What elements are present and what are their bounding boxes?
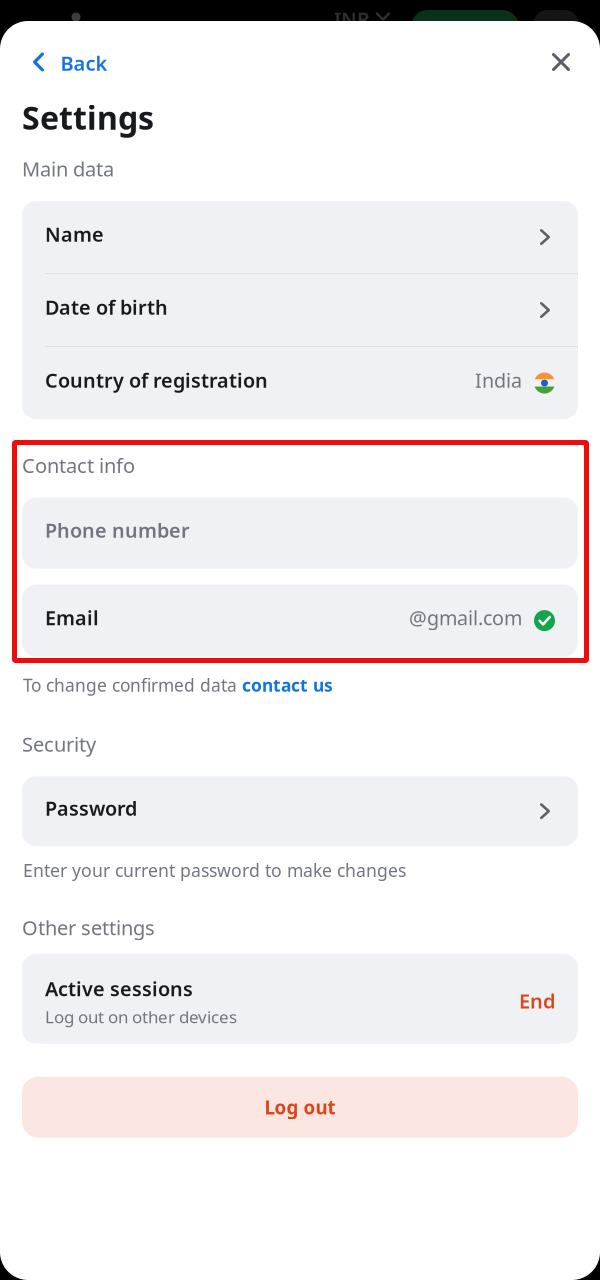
button[interactable]: Name: [22, 201, 578, 273]
staticText: Name: [45, 221, 104, 247]
staticText: Phone number: [45, 517, 190, 544]
staticText: Log out: [264, 1095, 335, 1120]
button[interactable]: Active sessions: [22, 954, 578, 1044]
staticText: Enter your current password to make chan…: [23, 858, 406, 882]
staticText: Country of registration: [45, 367, 268, 393]
button[interactable]: Password: [22, 776, 578, 846]
button[interactable]: Phone number: [22, 498, 578, 569]
button[interactable]: Close: [539, 40, 600, 84]
staticText: contact us: [242, 674, 333, 697]
staticText: Back: [60, 49, 107, 77]
button[interactable]: Back: [0, 40, 127, 84]
staticText: Contact info: [22, 452, 135, 479]
button[interactable]: Country of registration: [22, 347, 578, 419]
staticText: Log out on other devices: [45, 1005, 237, 1028]
staticText: Other settings: [22, 914, 155, 941]
staticText: Security: [22, 731, 96, 757]
staticText: INR: [334, 6, 370, 32]
staticText: Main data: [22, 155, 114, 182]
staticText: To change confirmed data: [23, 674, 242, 697]
button[interactable]: Email: [22, 585, 578, 657]
staticText: @gmail.com: [409, 604, 522, 631]
button[interactable]: Log out: [22, 1077, 578, 1138]
staticText: Email: [45, 604, 99, 631]
button[interactable]: Date of birth: [22, 274, 578, 346]
button[interactable]: contact us: [242, 674, 333, 697]
staticText: End: [519, 987, 556, 1014]
staticText: Date of birth: [45, 294, 168, 320]
staticText: Active sessions: [45, 975, 193, 1002]
staticText: India: [475, 367, 522, 393]
staticText: Settings: [22, 96, 154, 138]
staticText: Password: [45, 795, 137, 822]
